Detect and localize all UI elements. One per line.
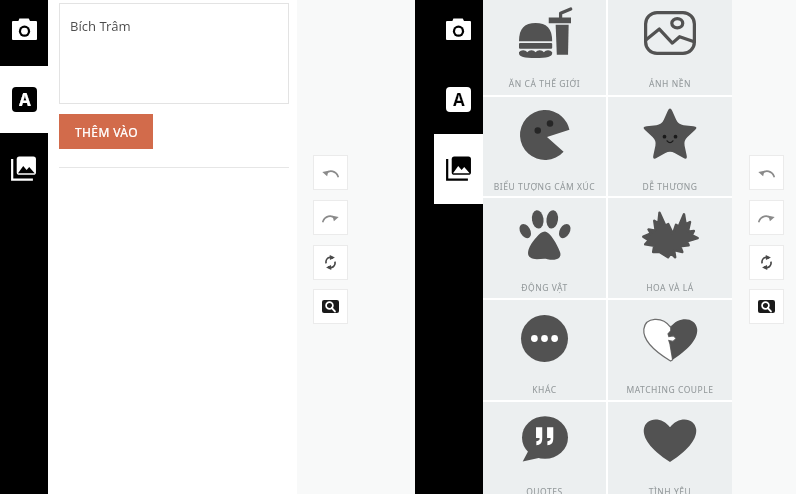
button[interactable]: Refresh [313,245,348,280]
staticText: A [19,88,31,111]
staticText: HOA VÀ LÁ [608,282,732,294]
button[interactable]: MATCHING COUPLE [608,300,732,400]
staticText: TÌNH YÊU [608,486,732,494]
button[interactable]: TÌNH YÊU [608,402,732,494]
staticText: ĐỘNG VẬT [483,282,606,294]
staticText: DỄ THƯƠNG [608,181,732,193]
staticText: MATCHING COUPLE [608,384,732,396]
staticText: ẢNH NỀN [608,78,732,90]
button[interactable]: THÊM VÀO [59,114,153,149]
staticText: THÊM VÀO [75,124,138,140]
button[interactable]: Zoom [749,289,784,324]
button[interactable]: KHÁC [483,300,606,400]
staticText: A [453,88,465,111]
button[interactable]: HOA VÀ LÁ [608,198,732,298]
staticText: BIỂU TƯỢNG CẢM XÚC [483,181,606,193]
button[interactable]: Text [434,66,483,134]
button[interactable]: Zoom [313,289,348,324]
button[interactable]: Redo [749,200,784,235]
button[interactable]: Undo [749,155,784,190]
button[interactable]: Stickers [0,133,48,213]
button[interactable]: ẢNH NỀN [608,0,732,95]
button[interactable]: Redo [313,200,348,235]
button[interactable]: BIỂU TƯỢNG CẢM XÚC [483,97,606,196]
button[interactable]: ĐỘNG VẬT [483,198,606,298]
staticText: Bích Trâm [70,17,131,35]
button[interactable]: Undo [313,155,348,190]
button[interactable]: Camera [434,0,483,66]
button[interactable]: DỄ THƯƠNG [608,97,732,196]
button[interactable]: Camera [0,0,48,66]
staticText: QUOTES [483,486,606,494]
button[interactable]: Text [0,66,48,133]
button[interactable]: Stickers [434,134,483,204]
staticText: ĂN CẢ THẾ GIỚI [483,78,606,90]
button[interactable]: Refresh [749,245,784,280]
button[interactable]: Text input [59,3,289,104]
staticText: KHÁC [483,384,606,396]
button[interactable]: ĂN CẢ THẾ GIỚI [483,0,606,95]
button[interactable]: QUOTES [483,402,606,494]
